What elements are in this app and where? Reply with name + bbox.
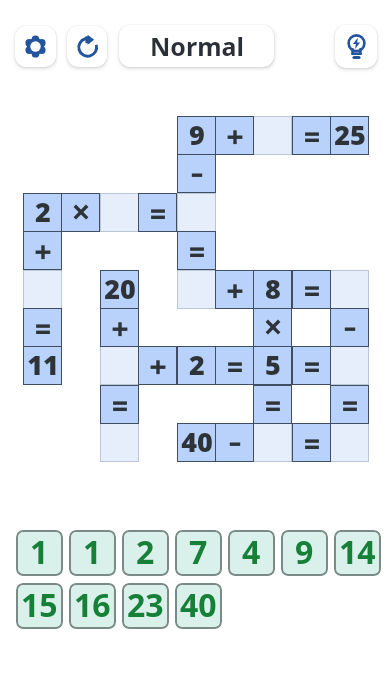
button[interactable] [292,270,331,309]
button[interactable] [292,346,331,385]
staticText: 23 [127,583,164,627]
button[interactable]: Hint [335,25,377,68]
button[interactable] [100,423,139,462]
staticText: 9 [295,530,314,574]
staticText: 4 [242,530,261,574]
button[interactable] [61,193,100,232]
button[interactable] [100,385,139,424]
button[interactable] [138,193,177,232]
button[interactable] [177,193,216,232]
staticText: 25 [334,116,366,153]
button[interactable]: 5 [253,346,292,385]
button[interactable] [215,346,254,385]
staticText: Normal [150,29,244,63]
staticText: 2 [189,346,205,383]
button[interactable]: 2 [177,346,216,385]
button[interactable] [330,308,369,347]
button[interactable] [215,270,254,309]
button[interactable] [330,346,369,385]
button[interactable] [177,270,216,309]
button[interactable] [215,116,254,155]
button[interactable] [253,116,292,155]
staticText: 9 [189,116,205,153]
button[interactable] [253,385,292,424]
button[interactable] [100,308,139,347]
button[interactable] [292,116,331,155]
button[interactable] [330,423,369,462]
staticText: 1 [83,530,102,574]
button[interactable] [138,346,177,385]
staticText: 20 [104,270,136,307]
button[interactable]: Settings [15,26,56,67]
staticText: 11 [27,346,59,383]
staticText: 7 [189,530,208,574]
staticText: 2 [35,193,51,230]
button[interactable]: 2 [23,193,62,232]
staticText: 2 [136,530,155,574]
button[interactable]: Restart puzzle [67,26,107,67]
button[interactable]: 1 [69,530,116,576]
button[interactable]: 7 [175,530,222,576]
button[interactable] [292,423,331,462]
button[interactable]: 40 [177,423,216,462]
staticText: 15 [21,583,58,627]
button[interactable] [100,193,139,232]
button[interactable]: Normal [119,25,274,67]
staticText: 8 [265,270,281,307]
button[interactable]: 8 [253,270,292,309]
staticText: 40 [180,583,217,627]
button[interactable]: 14 [334,530,381,576]
button[interactable]: 20 [100,270,139,309]
staticText: 5 [265,346,281,383]
button[interactable] [23,308,62,347]
button[interactable]: 25 [330,116,369,155]
button[interactable]: 2 [122,530,169,576]
button[interactable]: 40 [175,583,222,629]
button[interactable]: 16 [69,583,116,629]
button[interactable]: 15 [16,583,63,629]
button[interactable]: 4 [228,530,275,576]
button[interactable] [177,231,216,270]
button[interactable] [23,270,62,309]
staticText: 1 [30,530,49,574]
button[interactable] [330,385,369,424]
button[interactable]: 9 [281,530,328,576]
button[interactable]: 1 [16,530,63,576]
staticText: 14 [339,530,376,574]
button[interactable]: 11 [23,346,62,385]
button[interactable]: 9 [177,116,216,155]
staticText: 16 [74,583,111,627]
button[interactable] [330,270,369,309]
button[interactable] [215,423,254,462]
button[interactable] [253,423,292,462]
button[interactable] [253,308,292,347]
button[interactable] [177,154,216,193]
staticText: 40 [181,423,213,460]
button[interactable] [100,346,139,385]
button[interactable] [23,231,62,270]
button[interactable]: 23 [122,583,169,629]
